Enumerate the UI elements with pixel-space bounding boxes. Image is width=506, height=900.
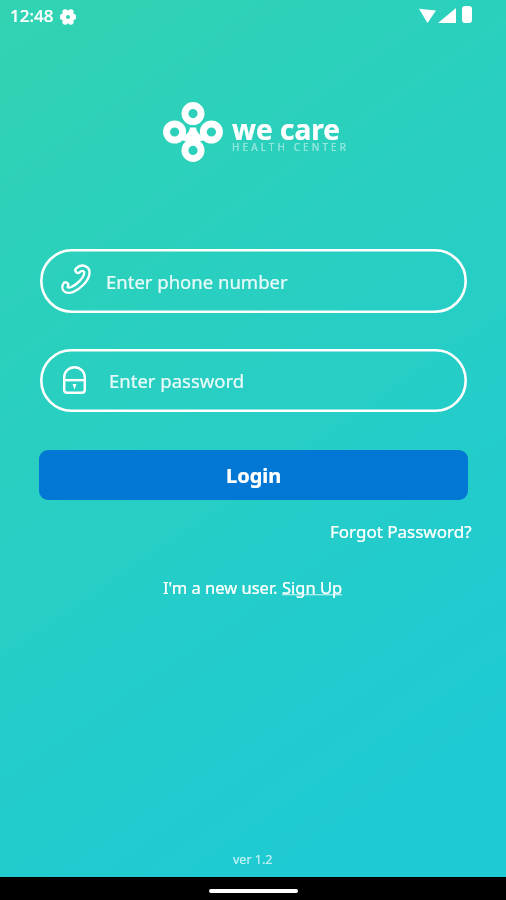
button[interactable]: Forgot Password? xyxy=(330,520,472,543)
staticText: I'm a new user. xyxy=(163,576,282,598)
staticText: we care xyxy=(232,110,340,148)
staticText: HEALTH CENTER xyxy=(232,140,350,154)
staticText: Sign Up xyxy=(282,576,343,598)
button[interactable]: Password xyxy=(40,349,467,412)
staticText: 12:48 xyxy=(10,4,54,27)
other: Phone number xyxy=(58,261,98,301)
staticText: Enter phone number xyxy=(106,269,288,294)
staticText: Enter password xyxy=(109,368,245,393)
other: Password xyxy=(63,366,86,394)
staticText: Login xyxy=(226,462,282,489)
button[interactable]: Login xyxy=(39,450,468,500)
staticText: Forgot Password? xyxy=(330,520,472,543)
button[interactable]: Phone number xyxy=(40,249,467,313)
button[interactable]: Sign Up xyxy=(282,576,343,598)
staticText: ver 1.2 xyxy=(233,851,273,868)
